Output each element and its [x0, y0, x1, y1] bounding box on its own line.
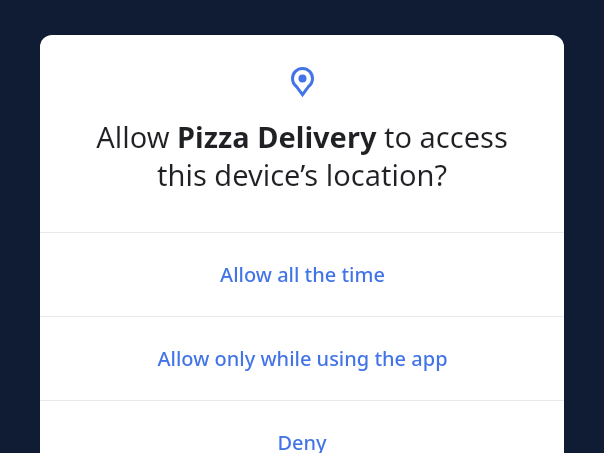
other: Location: [291, 67, 314, 96]
staticText: Allow only while using the app: [157, 345, 448, 372]
staticText: Allow Pizza Delivery to access this devi…: [74, 117, 530, 194]
button[interactable]: Allow all the time: [40, 233, 564, 316]
staticText: Deny: [277, 429, 327, 453]
staticText: Allow all the time: [220, 261, 385, 288]
button[interactable]: Allow only while using the app: [40, 317, 564, 400]
button[interactable]: Deny: [40, 401, 564, 453]
